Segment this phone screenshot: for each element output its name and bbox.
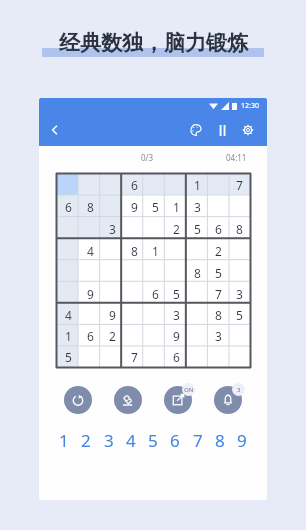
button[interactable]: Theme (183, 117, 209, 143)
button[interactable] (229, 196, 250, 218)
button[interactable]: 2 (101, 325, 123, 346)
button[interactable] (208, 346, 229, 367)
button[interactable]: 2 (166, 218, 187, 240)
button[interactable]: 6 (123, 174, 145, 196)
button[interactable]: 3 (98, 429, 120, 451)
button[interactable] (79, 218, 101, 240)
button[interactable] (145, 174, 166, 196)
button[interactable] (229, 346, 250, 367)
button[interactable]: Undo (64, 386, 92, 414)
button[interactable] (123, 325, 145, 346)
button[interactable] (166, 262, 187, 283)
button[interactable]: 5 (229, 304, 250, 325)
button[interactable]: 5 (145, 196, 166, 218)
button[interactable] (145, 325, 166, 346)
button[interactable] (101, 262, 123, 283)
button[interactable] (208, 196, 229, 218)
button[interactable]: 4 (57, 304, 79, 325)
button[interactable]: 1 (187, 174, 208, 196)
button[interactable]: 6 (166, 346, 187, 367)
button[interactable]: 6 (79, 325, 101, 346)
button[interactable]: 6 (164, 429, 186, 451)
button[interactable] (101, 240, 123, 262)
button[interactable]: 7 (123, 346, 145, 367)
button[interactable] (123, 283, 145, 304)
button[interactable]: 3 (166, 304, 187, 325)
button[interactable] (145, 304, 166, 325)
staticText: 9 (109, 307, 116, 323)
button[interactable] (57, 174, 79, 196)
button[interactable] (229, 325, 250, 346)
button[interactable] (79, 346, 101, 367)
button[interactable]: 6 (145, 283, 166, 304)
button[interactable]: 4 (79, 240, 101, 262)
button[interactable] (187, 283, 208, 304)
button[interactable]: 8 (79, 196, 101, 218)
button[interactable] (123, 304, 145, 325)
button[interactable]: 1 (53, 429, 75, 451)
button[interactable] (57, 283, 79, 304)
button[interactable]: 5 (57, 346, 79, 367)
button[interactable] (166, 174, 187, 196)
button[interactable] (145, 262, 166, 283)
staticText: 6 (173, 349, 180, 365)
button[interactable] (101, 196, 123, 218)
button[interactable]: Notes (164, 386, 192, 414)
button[interactable]: 1 (166, 196, 187, 218)
button[interactable]: 9 (123, 196, 145, 218)
button[interactable]: 3 (187, 196, 208, 218)
button[interactable] (123, 218, 145, 240)
button[interactable] (187, 346, 208, 367)
button[interactable] (57, 262, 79, 283)
button[interactable]: 3 (101, 218, 123, 240)
button[interactable]: 8 (209, 429, 231, 451)
button[interactable]: 9 (79, 283, 101, 304)
button[interactable]: 8 (208, 304, 229, 325)
button[interactable]: 3 (208, 325, 229, 346)
button[interactable]: 9 (166, 325, 187, 346)
button[interactable]: 6 (57, 196, 79, 218)
button[interactable]: 3 (229, 283, 250, 304)
button[interactable]: 1 (145, 240, 166, 262)
button[interactable] (57, 240, 79, 262)
button[interactable] (208, 174, 229, 196)
button[interactable]: 5 (208, 262, 229, 283)
button[interactable] (229, 240, 250, 262)
button[interactable] (101, 283, 123, 304)
button[interactable] (145, 346, 166, 367)
button[interactable] (57, 218, 79, 240)
button[interactable] (187, 240, 208, 262)
button[interactable]: 2 (75, 429, 97, 451)
button[interactable]: 5 (142, 429, 164, 451)
button[interactable]: 9 (101, 304, 123, 325)
button[interactable] (101, 174, 123, 196)
button[interactable]: 6 (208, 218, 229, 240)
button[interactable]: Erase (114, 386, 142, 414)
button[interactable] (101, 346, 123, 367)
button[interactable]: 4 (120, 429, 142, 451)
button[interactable] (166, 240, 187, 262)
button[interactable] (229, 262, 250, 283)
button[interactable]: 7 (229, 174, 250, 196)
button[interactable]: 5 (166, 283, 187, 304)
button[interactable] (145, 218, 166, 240)
button[interactable]: 8 (229, 218, 250, 240)
button[interactable]: 2 (208, 240, 229, 262)
button[interactable]: 9 (231, 429, 253, 451)
button[interactable] (79, 304, 101, 325)
button[interactable]: 8 (123, 240, 145, 262)
button[interactable] (187, 304, 208, 325)
button[interactable]: 1 (57, 325, 79, 346)
button[interactable] (79, 262, 101, 283)
button[interactable]: Pause (209, 117, 235, 143)
button[interactable]: 5 (187, 218, 208, 240)
button[interactable]: 8 (187, 262, 208, 283)
button[interactable] (187, 325, 208, 346)
button[interactable]: 7 (208, 283, 229, 304)
button[interactable]: 7 (187, 429, 209, 451)
button[interactable] (79, 174, 101, 196)
button[interactable]: Back (39, 114, 71, 146)
button[interactable]: Settings (235, 117, 261, 143)
button[interactable] (123, 262, 145, 283)
button[interactable]: Hint (214, 386, 242, 414)
